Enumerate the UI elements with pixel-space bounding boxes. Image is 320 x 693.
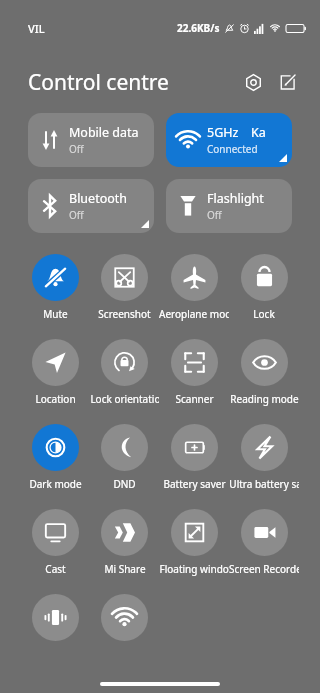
staticText: Off xyxy=(69,142,84,156)
staticText: Screen Recorder xyxy=(229,562,299,576)
staticText: Mute xyxy=(43,307,68,321)
button[interactable]: Vibrate xyxy=(32,594,79,641)
staticText: Off xyxy=(69,208,84,222)
staticText: Mobile data xyxy=(69,124,139,141)
staticText: 22.6KB/s xyxy=(177,21,220,35)
button[interactable]: 5GHz xyxy=(166,113,292,167)
staticText: 5GHz xyxy=(207,124,239,141)
button[interactable]: Screen Recorder xyxy=(229,509,299,576)
button[interactable]: DND xyxy=(90,424,159,491)
staticText: Battery saver xyxy=(163,477,226,491)
staticText: Lock xyxy=(253,307,275,321)
staticText: Connected xyxy=(207,142,258,156)
button[interactable]: Reading mode xyxy=(229,339,299,406)
button[interactable]: Screenshot xyxy=(90,254,159,321)
staticText: Reading mode xyxy=(230,392,299,406)
staticText: Screenshot xyxy=(98,307,151,321)
button[interactable]: Floating window xyxy=(159,509,229,576)
staticText: Mi Share xyxy=(104,562,146,576)
button[interactable]: Lock orientation xyxy=(90,339,159,406)
staticText: VIL xyxy=(28,21,45,36)
staticText: Aeroplane mode xyxy=(159,307,229,321)
button[interactable]: Bluetooth xyxy=(28,179,154,233)
button[interactable]: Flashlight xyxy=(166,179,292,233)
button[interactable]: Cast xyxy=(21,509,90,576)
button[interactable]: Settings xyxy=(238,67,268,97)
button[interactable]: Dark mode xyxy=(21,424,90,491)
button[interactable]: Mute xyxy=(21,254,90,321)
button[interactable]: Hotspot xyxy=(101,594,148,641)
button[interactable]: Ultra battery saver xyxy=(229,424,299,491)
staticText: Scanner xyxy=(175,392,214,406)
staticText: Dark mode xyxy=(29,477,82,491)
staticText: DND xyxy=(113,477,136,491)
button[interactable]: Lock xyxy=(229,254,299,321)
button[interactable]: Mobile data xyxy=(28,113,154,167)
staticText: Off xyxy=(207,208,222,222)
button[interactable]: Scanner xyxy=(159,339,229,406)
button[interactable]: Mi Share xyxy=(90,509,159,576)
staticText: Ultra battery saver xyxy=(229,477,299,491)
button[interactable]: Location xyxy=(21,339,90,406)
button[interactable]: Aeroplane mode xyxy=(159,254,229,321)
staticText: Location xyxy=(35,392,76,406)
button[interactable]: Battery saver xyxy=(159,424,229,491)
staticText: Lock orientation xyxy=(90,392,159,406)
staticText: Bluetooth xyxy=(69,190,128,207)
staticText: Cast xyxy=(45,562,66,576)
button[interactable]: Edit xyxy=(273,67,303,97)
staticText: Floating window xyxy=(159,562,229,576)
staticText: Control centre xyxy=(28,68,169,97)
staticText: Flashlight xyxy=(207,190,264,207)
staticText: Ka xyxy=(251,124,266,141)
